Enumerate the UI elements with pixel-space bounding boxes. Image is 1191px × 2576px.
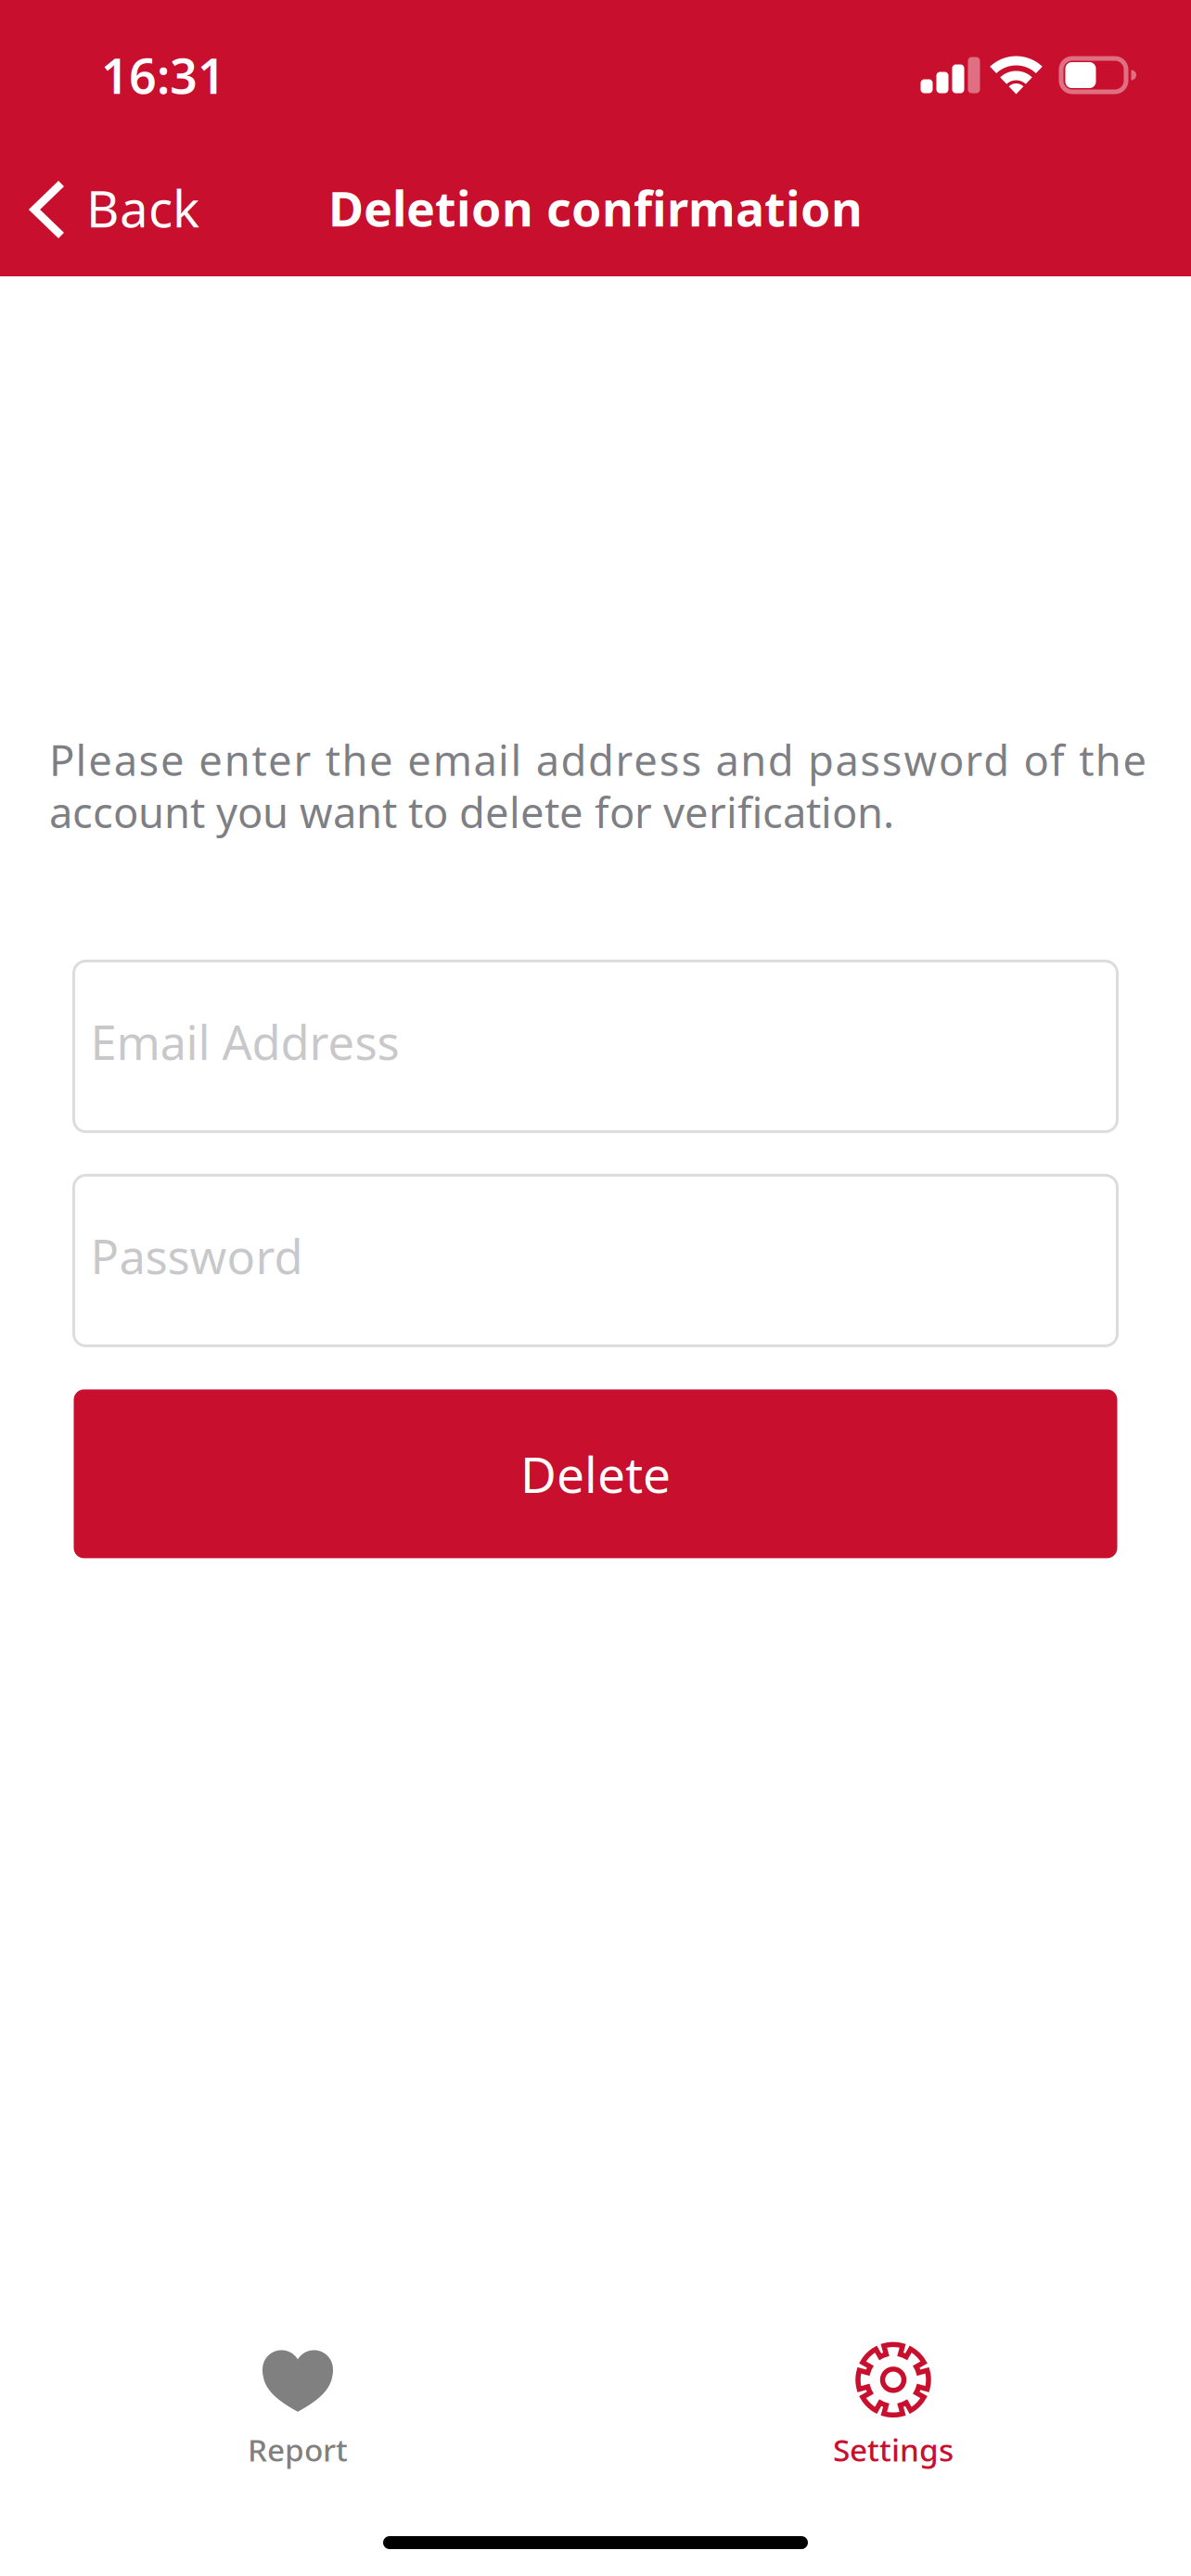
staticText: Report bbox=[248, 2429, 348, 2470]
button[interactable]: Back bbox=[0, 174, 224, 241]
button[interactable]: Report bbox=[0, 2343, 595, 2469]
staticText: Password bbox=[90, 1225, 303, 1287]
button[interactable]: Delete bbox=[74, 1389, 1117, 1558]
staticText: Email Address bbox=[90, 1011, 399, 1073]
staticText: Settings bbox=[833, 2429, 954, 2470]
button[interactable]: Settings bbox=[595, 2343, 1191, 2469]
staticText: Deletion confirmation bbox=[328, 176, 863, 240]
staticText: Please enter the email address and passw… bbox=[49, 732, 1147, 787]
staticText: account you want to delete for verificat… bbox=[49, 784, 894, 840]
staticText: Back bbox=[86, 174, 199, 241]
staticText: 16:31 bbox=[101, 43, 225, 107]
staticText: Delete bbox=[520, 1441, 671, 1507]
